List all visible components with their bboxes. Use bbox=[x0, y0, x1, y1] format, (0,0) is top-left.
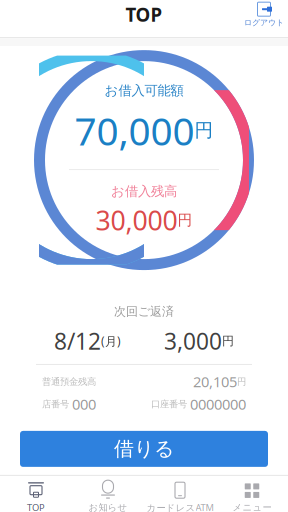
staticText: 借りる bbox=[114, 437, 174, 461]
staticText: 8/12 bbox=[54, 326, 101, 356]
staticText: 円 bbox=[194, 119, 213, 142]
staticText: 0000000 bbox=[190, 394, 246, 414]
staticText: お知らせ bbox=[88, 502, 127, 512]
button[interactable]: ログアウト bbox=[244, 0, 284, 32]
staticText: 口座番号 bbox=[151, 398, 187, 410]
staticText: 円 bbox=[222, 333, 234, 348]
staticText: ログアウト bbox=[244, 18, 284, 27]
button[interactable]: TOP bbox=[0, 476, 72, 512]
staticText: (月) bbox=[101, 333, 121, 349]
staticText: 000 bbox=[72, 394, 96, 414]
button[interactable]: 借りる bbox=[20, 431, 268, 467]
button[interactable]: カードレスATM bbox=[144, 476, 216, 512]
staticText: カードレスATM bbox=[146, 501, 213, 512]
staticText: 次回ご返済 bbox=[114, 304, 174, 319]
staticText: 円 bbox=[177, 211, 192, 229]
staticText: 店番号 bbox=[42, 398, 69, 410]
staticText: メニュー bbox=[232, 502, 271, 512]
staticText: TOP bbox=[125, 2, 162, 27]
staticText: TOP bbox=[27, 501, 45, 512]
staticText: お借入可能額 bbox=[104, 82, 183, 99]
staticText: 20,105 bbox=[193, 372, 237, 391]
button[interactable]: お知らせ bbox=[72, 476, 144, 512]
staticText: 普通預金残高 bbox=[42, 376, 96, 387]
button[interactable]: メニュー bbox=[216, 476, 288, 512]
staticText: 30,000 bbox=[95, 202, 177, 238]
staticText: 3,000 bbox=[164, 326, 222, 356]
staticText: お借入残高 bbox=[111, 183, 177, 199]
staticText: 円 bbox=[237, 376, 246, 387]
staticText: 70,000 bbox=[74, 105, 194, 156]
